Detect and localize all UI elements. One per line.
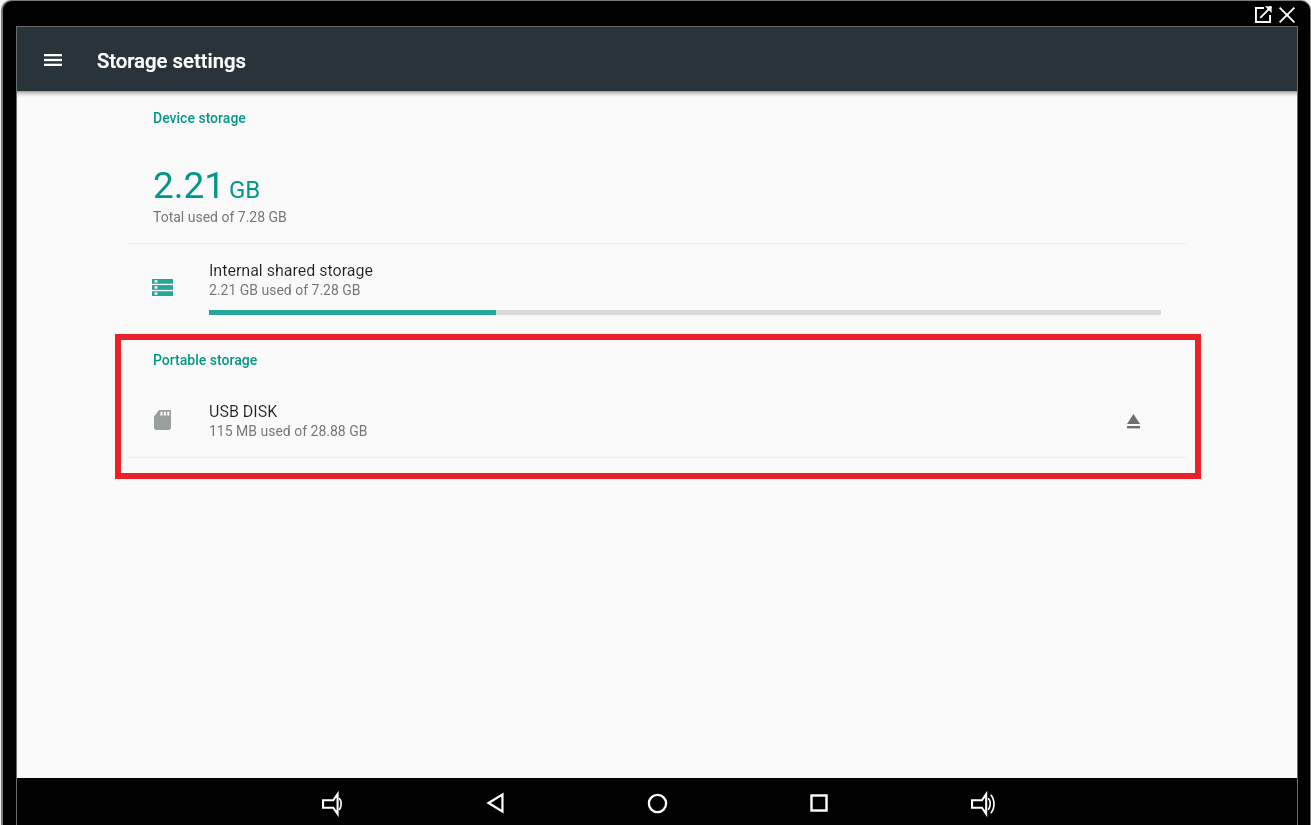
staticText: Total used of 7.28 GB [153,209,287,225]
staticText: 2.21 GB used of 7.28 GB [209,282,361,298]
staticText: USB DISK [209,402,278,421]
button[interactable]: Volume up [962,784,1002,824]
staticText: 2.21 [153,164,226,207]
button[interactable]: Open navigation menu [31,38,75,82]
staticText: GB [229,176,261,204]
staticText: Device storage [153,110,246,126]
staticText: Internal shared storage [209,261,373,280]
button[interactable]: Restore window [1255,7,1271,23]
staticText: 115 MB used of 28.88 GB [209,423,368,439]
staticText: Portable storage [153,352,258,368]
button[interactable]: Close window [1279,7,1295,23]
button[interactable] [17,244,1297,324]
button[interactable] [17,387,1297,457]
button[interactable]: Volume down [312,784,352,824]
button[interactable]: Back [475,783,515,823]
button[interactable]: Recent apps [799,783,839,823]
button[interactable]: Eject USB DISK [1109,397,1157,445]
button[interactable]: Home [637,783,677,823]
staticText: Storage settings [97,49,246,73]
